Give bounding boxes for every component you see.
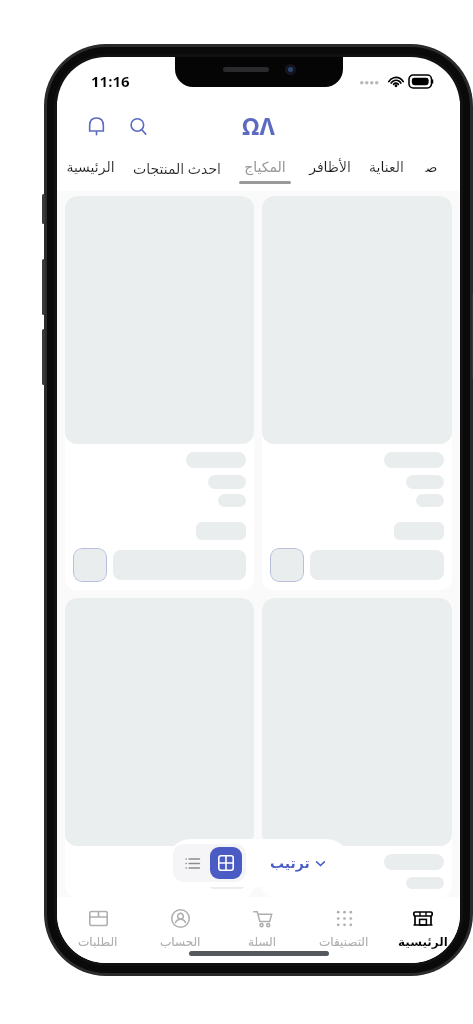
button[interactable]: Search — [121, 109, 155, 143]
button[interactable]: المكياج — [230, 151, 300, 191]
staticText: ΩΛ — [242, 110, 275, 141]
button[interactable]: Add to cart — [65, 196, 254, 590]
button[interactable]: صحة الفم والأ — [413, 151, 450, 191]
button[interactable]: Add to cart — [262, 196, 452, 590]
button[interactable]: Add to cart — [65, 598, 254, 897]
button[interactable]: احدث المنتجات — [124, 151, 230, 191]
staticText: احدث المنتجات — [133, 159, 221, 178]
staticText: السلة — [248, 935, 277, 949]
button[interactable]: السلة — [221, 903, 303, 952]
staticText: الرئيسية — [66, 159, 115, 175]
button[interactable]: Add to cart — [262, 598, 452, 897]
staticText: الأظافر — [309, 159, 351, 175]
button[interactable]: Add to cart — [270, 548, 304, 582]
staticText: المكياج — [244, 159, 286, 175]
button[interactable]: الحساب — [139, 903, 221, 952]
staticText: صحة الفم والأ — [422, 159, 441, 175]
button[interactable]: الرئيسية — [385, 903, 460, 952]
button[interactable]: List view — [177, 848, 207, 878]
button[interactable]: Grid view — [210, 847, 242, 879]
button[interactable]: ترتيب — [262, 849, 334, 877]
staticText: التصنيفات — [319, 935, 369, 949]
button[interactable]: Add to cart — [73, 548, 107, 582]
button[interactable]: العناية — [360, 151, 413, 191]
staticText: الطلبات — [78, 935, 118, 949]
staticText: ترتيب — [270, 855, 310, 871]
button[interactable]: الطلبات — [57, 903, 139, 952]
button[interactable]: الرئيسية — [57, 151, 124, 191]
staticText: 11:16 — [91, 71, 130, 91]
staticText: الحساب — [160, 935, 201, 949]
button[interactable]: Notifications — [79, 109, 113, 143]
button[interactable]: الأظافر — [300, 151, 360, 191]
staticText: الرئيسية — [398, 935, 448, 949]
button[interactable]: التصنيفات — [303, 903, 385, 952]
staticText: العناية — [369, 159, 404, 175]
